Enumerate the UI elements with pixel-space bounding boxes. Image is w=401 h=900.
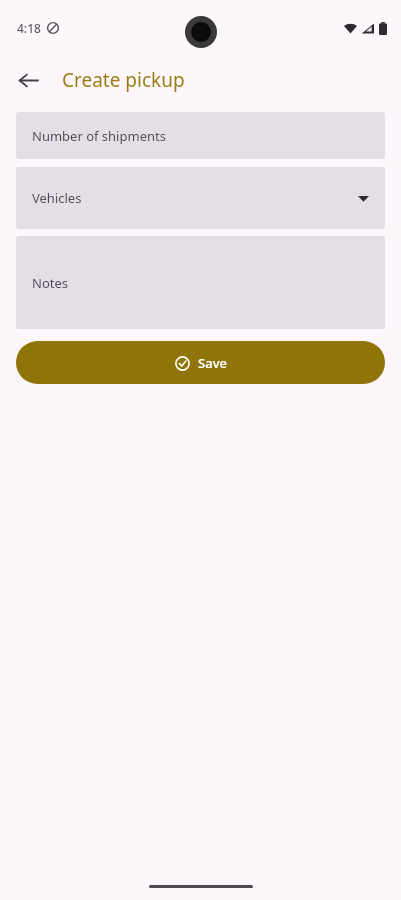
- staticText: 4:18: [17, 20, 41, 36]
- button[interactable]: Notes: [16, 236, 385, 329]
- staticText: Notes: [32, 274, 68, 292]
- staticText: Create pickup: [62, 67, 185, 93]
- staticText: Number of shipments: [32, 127, 166, 145]
- staticText: Save: [198, 354, 227, 372]
- button[interactable]: Number of shipments: [16, 112, 385, 159]
- button[interactable]: Save: [16, 341, 385, 384]
- button[interactable]: Back: [6, 58, 50, 102]
- button[interactable]: Vehicles: [16, 167, 385, 229]
- staticText: Vehicles: [32, 189, 82, 207]
